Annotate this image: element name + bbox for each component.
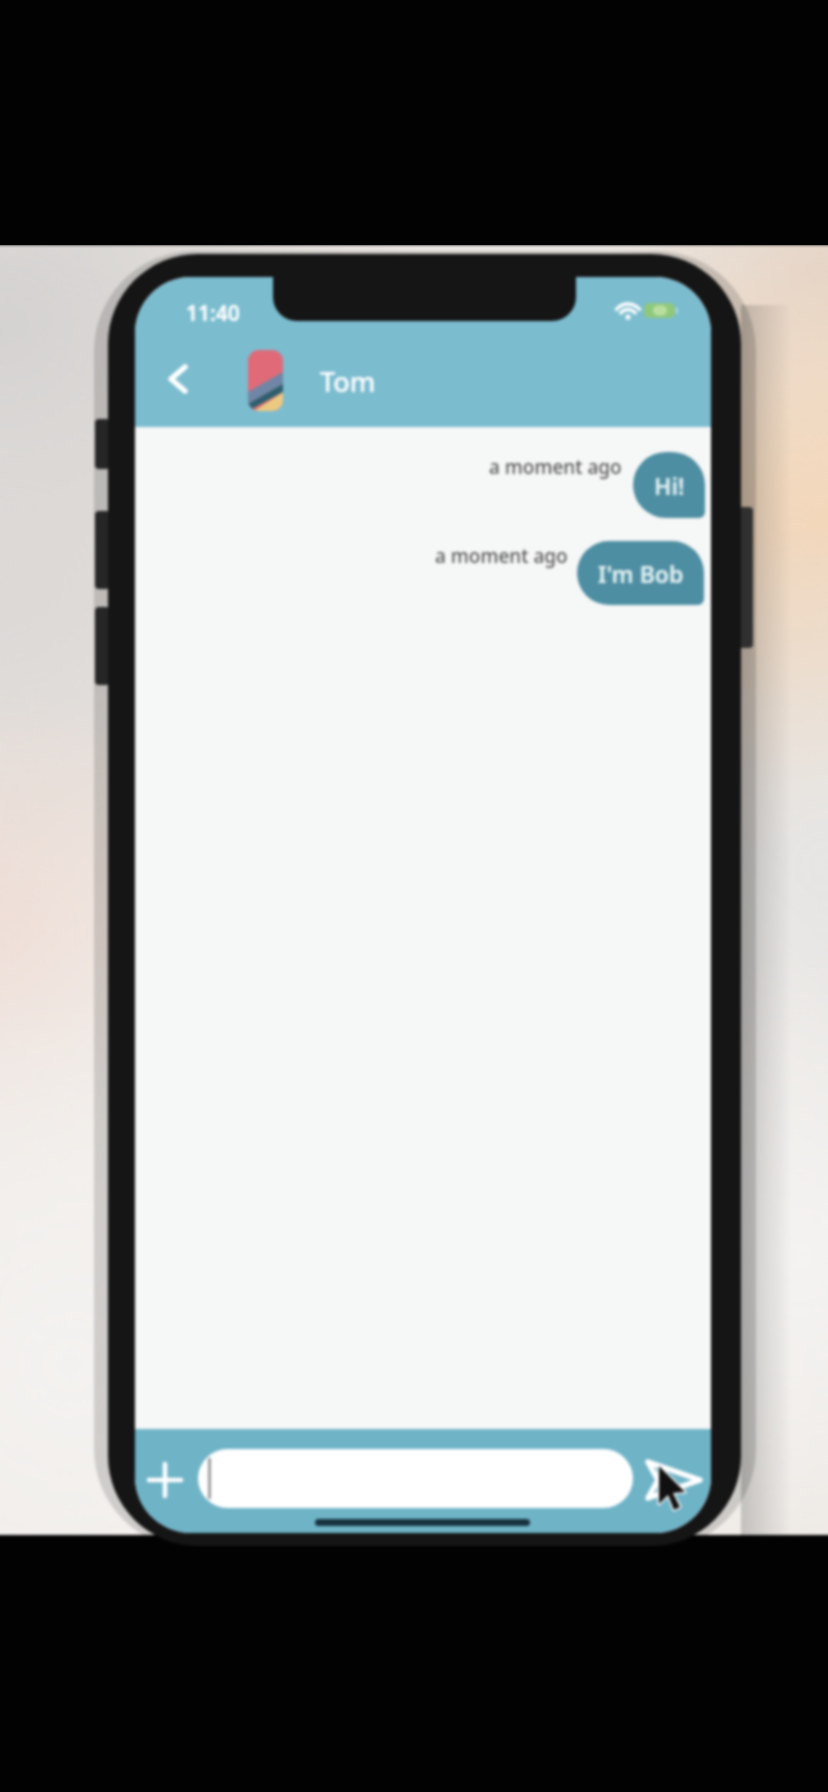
button[interactable]: I'm Bob [577,541,704,605]
staticText: 11:40 [186,299,240,328]
staticText: I'm Bob [598,558,684,589]
staticText: Hi! [654,470,685,501]
button[interactable] [151,349,205,407]
staticText: Tom [320,363,376,400]
button[interactable] [248,350,283,411]
button[interactable] [139,1459,191,1511]
staticText: a moment ago [435,543,568,569]
staticText: a moment ago [489,454,622,480]
button[interactable] [198,1449,633,1508]
button[interactable] [639,1447,707,1511]
button[interactable]: Hi! [633,452,705,518]
